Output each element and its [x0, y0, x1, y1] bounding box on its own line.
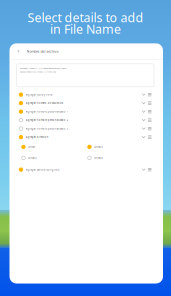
button[interactable]: Agregar dirección: [9, 133, 163, 141]
staticText: Línea 3: [94, 145, 102, 149]
button[interactable]: Línea 3: [87, 141, 153, 152]
staticText: Agregar nombre personalizado 2: [26, 118, 68, 122]
staticText: Línea 2: [28, 156, 36, 160]
staticText: Línea 1: [28, 145, 36, 149]
staticText: España,Puente,40.414305,-3.71378.jpg: [19, 70, 55, 73]
button[interactable]: Add: [15, 48, 21, 54]
staticText: +: [17, 48, 20, 55]
button[interactable]: Agregar Latitud/Longitud: [9, 165, 163, 174]
button[interactable]: Línea 4: [87, 152, 153, 163]
button[interactable]: Agregar nombre personalizado 2: [9, 116, 163, 124]
button[interactable]: Agregar número de secuencia: [9, 99, 163, 107]
staticText: Nombre del archivo: [26, 49, 58, 54]
staticText: Select details to add: [27, 9, 143, 26]
staticText: Línea 4: [94, 156, 102, 160]
button[interactable]: Agregar nombre personalizado 1: [9, 107, 163, 116]
staticText: Agregar dirección: [26, 135, 49, 139]
staticText: Agregar número de secuencia: [26, 101, 63, 105]
staticText: in File Name: [50, 20, 121, 37]
button[interactable]: Agregar nombre personalizado 3: [9, 124, 163, 133]
button[interactable]: Línea 1: [21, 141, 87, 152]
staticText: Agregar fecha y hora: [26, 93, 52, 96]
button[interactable]: Agregar fecha y hora: [9, 90, 163, 99]
button[interactable]: Línea 2: [21, 152, 87, 163]
staticText: 20190905_114924_N_1_INDTPMapCamera,Ciu P…: [19, 67, 66, 70]
staticText: Agregar Latitud/Longitud: [26, 168, 60, 171]
staticText: Agregar nombre personalizado 3: [26, 127, 68, 130]
staticText: Agregar nombre personalizado 1: [26, 110, 68, 113]
